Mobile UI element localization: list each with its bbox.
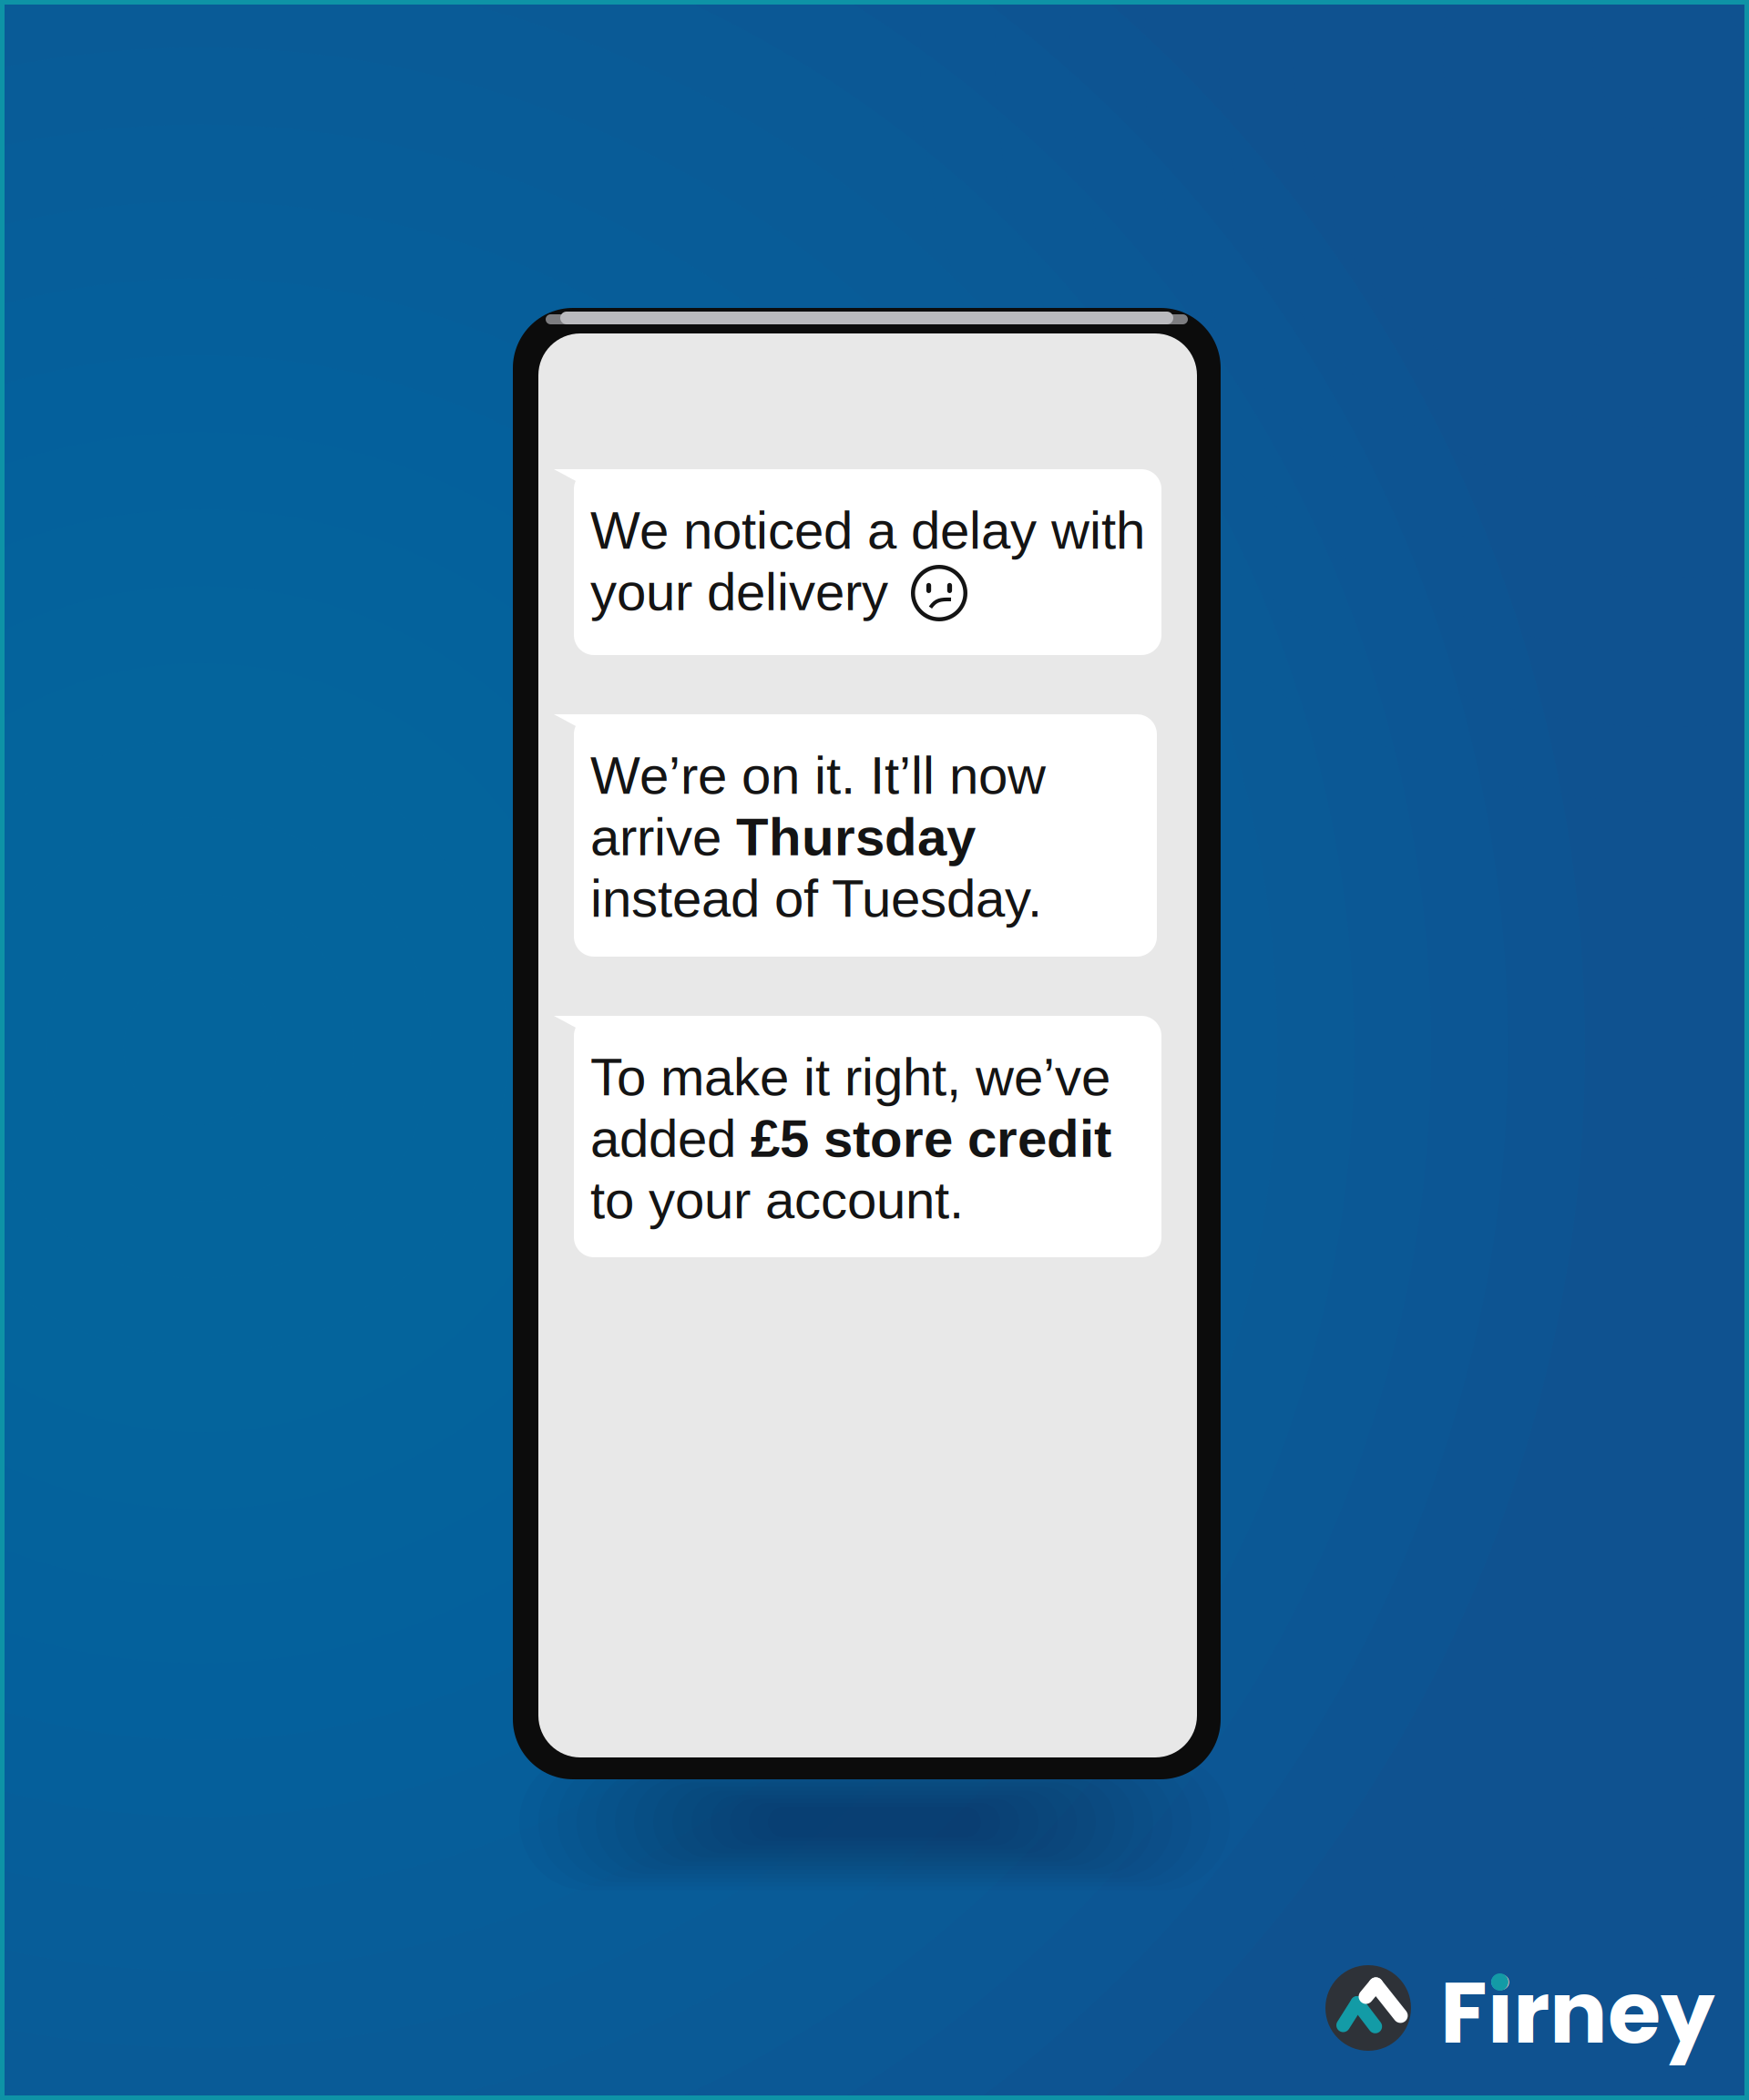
staticText: Firney bbox=[1440, 1952, 1715, 2073]
staticText: To make it right, we’ve bbox=[590, 1047, 1110, 1106]
staticText: £5 store credit bbox=[751, 1109, 1111, 1168]
staticText: Thursday bbox=[736, 807, 976, 866]
staticText: added bbox=[590, 1109, 751, 1168]
button[interactable]: Firney bbox=[0, 0, 1749, 2100]
staticText: We noticed a delay with bbox=[590, 501, 1145, 560]
button[interactable]: To make it right, we’ve bbox=[0, 0, 1749, 2100]
staticText: instead of Tuesday. bbox=[590, 869, 1042, 928]
staticText: arrive bbox=[590, 807, 736, 866]
staticText: We’re on it. It’ll now bbox=[590, 746, 1046, 805]
button[interactable]: We’re on it. It’ll now bbox=[0, 0, 1749, 2100]
staticText: to your account. bbox=[590, 1170, 964, 1229]
button[interactable]: We noticed a delay with bbox=[0, 0, 1749, 2100]
staticText: your delivery bbox=[590, 562, 888, 621]
